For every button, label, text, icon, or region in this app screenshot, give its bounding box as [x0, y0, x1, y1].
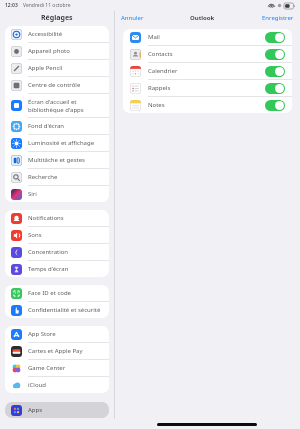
- button[interactable]: Face ID et code: [5, 285, 109, 301]
- staticText: Temps d'écran: [28, 265, 69, 273]
- staticText: Notifications: [28, 214, 64, 222]
- button[interactable]: Centre de contrôle: [5, 77, 109, 93]
- button[interactable]: Game Center: [5, 360, 109, 376]
- staticText: 12:03: [5, 2, 18, 9]
- button[interactable]: Toggle on: [265, 32, 285, 43]
- staticText: Confidentialité et sécurité: [28, 306, 101, 314]
- staticText: Outlook: [190, 14, 215, 22]
- button[interactable]: Toggle on: [265, 100, 285, 111]
- button[interactable]: Contacts: [123, 46, 292, 62]
- button[interactable]: Concentration: [5, 244, 109, 260]
- staticText: Calendrier: [148, 67, 178, 75]
- button[interactable]: Écran d'accueil et: [5, 94, 109, 117]
- button[interactable]: Confidentialité et sécurité: [5, 302, 109, 318]
- button[interactable]: Recherche: [5, 169, 109, 185]
- staticText: Réglages: [41, 13, 73, 23]
- button[interactable]: Calendrier: [123, 63, 292, 79]
- staticText: Contacts: [148, 50, 173, 58]
- staticText: Multitâche et gestes: [28, 156, 85, 164]
- staticText: Appareil photo: [28, 47, 70, 55]
- staticText: Game Center: [28, 364, 66, 372]
- button[interactable]: Apps: [5, 402, 109, 418]
- button[interactable]: Toggle on: [265, 49, 285, 60]
- staticText: Luminosité et affichage: [28, 139, 95, 147]
- button[interactable]: Toggle on: [265, 66, 285, 77]
- staticText: Apple Pencil: [28, 64, 63, 72]
- button[interactable]: Toggle on: [265, 83, 285, 94]
- button[interactable]: Fond d'écran: [5, 118, 109, 134]
- button[interactable]: Apple Pencil: [5, 60, 109, 76]
- button[interactable]: Sons: [5, 227, 109, 243]
- staticText: Centre de contrôle: [28, 81, 81, 89]
- button[interactable]: Mail: [123, 29, 292, 45]
- staticText: Accessibilité: [28, 30, 63, 38]
- staticText: Concentration: [28, 248, 69, 256]
- staticText: Annuler: [121, 14, 144, 22]
- staticText: Rappels: [148, 84, 171, 92]
- staticText: Apps: [28, 406, 43, 414]
- staticText: bibliothèque d'apps: [28, 106, 84, 114]
- button[interactable]: Temps d'écran: [5, 261, 109, 277]
- button[interactable]: App Store: [5, 326, 109, 342]
- button[interactable]: Enregistrer: [262, 14, 294, 22]
- staticText: Vendredi 11 octobre: [23, 2, 71, 9]
- button[interactable]: Luminosité et affichage: [5, 135, 109, 151]
- staticText: Recherche: [28, 173, 58, 181]
- staticText: Sons: [28, 231, 42, 239]
- button[interactable]: Appareil photo: [5, 43, 109, 59]
- staticText: Notes: [148, 101, 165, 109]
- staticText: Cartes et Apple Pay: [28, 347, 83, 355]
- staticText: App Store: [28, 330, 56, 338]
- staticText: iCloud: [28, 381, 46, 389]
- button[interactable]: Cartes et Apple Pay: [5, 343, 109, 359]
- button[interactable]: Rappels: [123, 80, 292, 96]
- staticText: Fond d'écran: [28, 122, 65, 130]
- button[interactable]: Accessibilité: [5, 26, 109, 42]
- button[interactable]: Notes: [123, 97, 292, 113]
- staticText: Écran d'accueil et: [28, 98, 77, 106]
- button[interactable]: Multitâche et gestes: [5, 152, 109, 168]
- staticText: Mail: [148, 33, 160, 41]
- staticText: Face ID et code: [28, 289, 71, 297]
- button[interactable]: iCloud: [5, 377, 109, 393]
- staticText: Enregistrer: [262, 14, 294, 22]
- button[interactable]: Annuler: [121, 14, 144, 22]
- staticText: Siri: [28, 190, 37, 198]
- button[interactable]: Notifications: [5, 210, 109, 226]
- button[interactable]: Siri: [5, 186, 109, 202]
